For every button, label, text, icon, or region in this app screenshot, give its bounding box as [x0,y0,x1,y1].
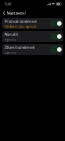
button[interactable]: Ztlumit oznámení [2,44,63,55]
staticText: Ztlumit oznámení [4,45,34,50]
staticText: Průzvuk oznámení [4,19,36,24]
staticText: Vypnuto [4,38,16,41]
staticText: Zapnuto [4,51,16,54]
staticText: Oznámení jsou vypnutá [4,25,35,28]
staticText: 9:41 [4,1,11,7]
staticText: Nerušit [4,32,17,37]
button[interactable]: Nerušit [2,31,63,42]
staticText: Nastavení [6,10,25,16]
button[interactable]: Průzvuk oznámení [2,18,63,29]
button[interactable]: Nastavení [0,8,27,18]
